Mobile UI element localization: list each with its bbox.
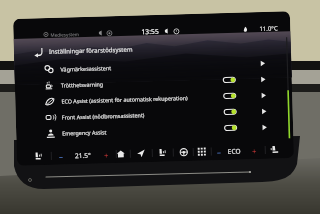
staticText: – xyxy=(59,151,63,162)
button[interactable]: Back xyxy=(31,45,45,59)
button[interactable]: + xyxy=(93,145,119,164)
button[interactable]: Home xyxy=(115,145,127,163)
staticText: Emergency Assist xyxy=(62,128,107,137)
button[interactable]: Front Assist (nödbromsassistent) xyxy=(45,102,293,125)
staticText: + xyxy=(252,145,257,156)
button[interactable]: – xyxy=(205,142,232,160)
button[interactable]: Toggle Front Assist (nödbromsassistent) xyxy=(224,109,237,115)
button[interactable]: ECO Assist (assistent för automatisk rek… xyxy=(45,86,292,109)
button[interactable]: – xyxy=(48,146,74,165)
staticText: Front Assist (nödbromsassistent) xyxy=(62,111,145,121)
staticText: ECO xyxy=(228,147,241,156)
button[interactable]: + xyxy=(240,141,267,160)
staticText: ECO Assist (assistent för automatisk rek… xyxy=(61,94,188,104)
staticText: + xyxy=(104,149,109,160)
button[interactable]: Rear window heating xyxy=(268,140,281,159)
staticText: 11.0°C xyxy=(259,24,278,33)
button[interactable]: Toggle Emergency Assist xyxy=(224,125,237,131)
button[interactable]: Seat xyxy=(156,144,169,162)
staticText: 21.5° xyxy=(75,151,91,160)
button[interactable]: Apps xyxy=(195,142,208,161)
staticText: Mediesystem xyxy=(50,31,80,38)
staticText: Inställningar förarstödsystem xyxy=(49,46,133,56)
button[interactable]: ECO xyxy=(220,141,247,160)
button[interactable]: 21.5° xyxy=(70,146,96,164)
staticText: Trötthetsvarning xyxy=(61,80,104,89)
button[interactable]: Trötthetsvarning xyxy=(45,70,292,93)
button[interactable]: Toggle Trötthetsvarning xyxy=(223,77,236,83)
button[interactable]: Navigation xyxy=(135,144,147,162)
button[interactable]: Toggle ECO Assist (assistent för automat… xyxy=(223,93,236,99)
staticText: 13:55 xyxy=(141,27,159,36)
button[interactable]: Climate xyxy=(177,143,190,161)
staticText: Vägmärkesassistent xyxy=(60,64,111,73)
button[interactable]: Emergency Assist xyxy=(46,118,293,141)
button[interactable]: Driver seat heating xyxy=(33,147,45,165)
staticText: – xyxy=(217,146,221,157)
button[interactable]: Vägmärkesassistent xyxy=(44,54,292,77)
